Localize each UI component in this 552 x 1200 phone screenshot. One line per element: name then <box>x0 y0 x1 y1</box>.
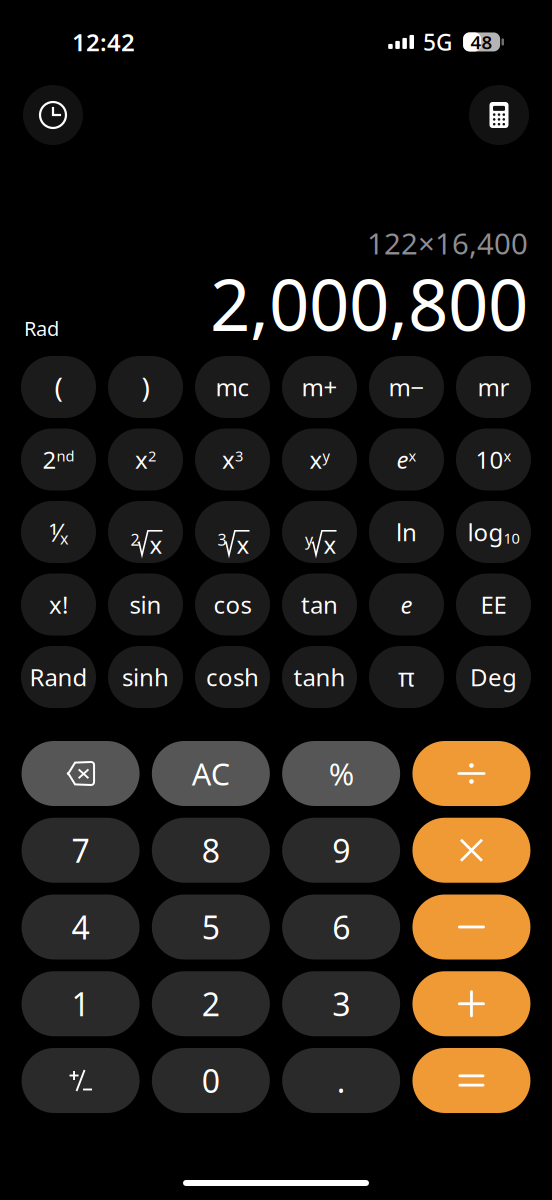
staticText: ex <box>396 444 416 475</box>
staticText: x <box>236 529 249 560</box>
button[interactable]: 1 <box>22 971 140 1036</box>
button[interactable]: Divide <box>412 741 530 806</box>
button[interactable]: ) <box>108 356 183 418</box>
button[interactable]: . <box>282 1048 400 1113</box>
staticText: x <box>149 529 162 560</box>
staticText: 3 <box>332 982 350 1025</box>
staticText: EE <box>480 589 506 620</box>
staticText: cos <box>213 589 251 620</box>
button[interactable]: m+ <box>282 356 357 418</box>
button[interactable]: tan <box>282 573 357 635</box>
button[interactable]: e <box>369 573 444 635</box>
staticText: Rand <box>29 661 87 693</box>
staticText: 4 <box>72 906 90 948</box>
button[interactable]: Calculator <box>469 85 529 145</box>
button[interactable]: EE <box>456 573 531 635</box>
staticText: cosh <box>206 661 259 693</box>
staticText: x2 <box>135 444 156 475</box>
button[interactable]: History <box>23 85 83 145</box>
button[interactable]: cosh <box>195 646 270 708</box>
button[interactable]: mc <box>195 356 270 418</box>
button[interactable]: 8 <box>152 818 270 883</box>
button[interactable]: Nth root <box>282 501 357 563</box>
button[interactable]: ⅟x <box>21 501 96 563</box>
button[interactable]: Multiply <box>412 818 530 883</box>
staticText: mr <box>477 371 509 403</box>
button[interactable]: 2nd <box>21 428 96 490</box>
button[interactable]: Plus minus <box>22 1048 140 1113</box>
staticText: 5 <box>202 906 220 948</box>
staticText: tanh <box>293 661 345 693</box>
button[interactable]: mr <box>456 356 531 418</box>
staticText: % <box>329 753 354 794</box>
staticText: m− <box>388 371 424 403</box>
button[interactable]: 7 <box>22 818 140 883</box>
button[interactable]: Add <box>412 971 530 1036</box>
staticText: 48 <box>471 29 493 54</box>
button[interactable]: π <box>369 646 444 708</box>
button[interactable]: m− <box>369 356 444 418</box>
staticText: Rad <box>24 315 59 341</box>
button[interactable]: Subtract <box>412 894 530 959</box>
button[interactable]: 9 <box>282 818 400 883</box>
button[interactable]: 6 <box>282 894 400 959</box>
button[interactable]: % <box>282 741 400 806</box>
staticText: mc <box>215 371 249 403</box>
button[interactable]: AC <box>152 741 270 806</box>
button[interactable]: 4 <box>22 894 140 959</box>
staticText: 2 <box>130 529 139 550</box>
staticText: 8 <box>202 829 220 871</box>
button[interactable]: x! <box>21 573 96 635</box>
button[interactable]: Deg <box>456 646 531 708</box>
button[interactable]: xy <box>282 428 357 490</box>
staticText: 12:42 <box>72 26 135 58</box>
staticText: AC <box>192 753 230 794</box>
staticText: π <box>398 660 415 694</box>
button[interactable]: ex <box>369 428 444 490</box>
button[interactable]: sinh <box>108 646 183 708</box>
staticText: ⅟x <box>49 515 68 549</box>
staticText: 6 <box>332 906 350 948</box>
staticText: 5G <box>423 27 452 57</box>
staticText: ln <box>396 516 417 548</box>
button[interactable]: Cube root <box>195 501 270 563</box>
staticText: . <box>337 1059 346 1102</box>
button[interactable]: ln <box>369 501 444 563</box>
staticText: 2nd <box>42 444 74 475</box>
staticText: x3 <box>222 444 243 475</box>
staticText: 10x <box>475 444 511 475</box>
staticText: sin <box>129 589 161 620</box>
staticText: ) <box>141 368 149 406</box>
staticText: x <box>323 529 336 560</box>
staticText: 2,000,800 <box>210 257 528 350</box>
button[interactable]: x2 <box>108 428 183 490</box>
button[interactable]: 5 <box>152 894 270 959</box>
staticText: sinh <box>122 661 169 693</box>
button[interactable]: 3 <box>282 971 400 1036</box>
staticText: 1 <box>72 982 90 1025</box>
staticText: x! <box>49 589 68 620</box>
button[interactable]: Rand <box>21 646 96 708</box>
staticText: m+ <box>301 371 337 403</box>
button[interactable]: x3 <box>195 428 270 490</box>
button[interactable]: Square root <box>108 501 183 563</box>
staticText: Deg <box>470 661 517 693</box>
staticText: log10 <box>467 516 519 548</box>
button[interactable]: 2 <box>152 971 270 1036</box>
button[interactable]: tanh <box>282 646 357 708</box>
staticText: 3 <box>217 529 226 550</box>
button[interactable]: log10 <box>456 501 531 563</box>
button[interactable]: sin <box>108 573 183 635</box>
button[interactable]: cos <box>195 573 270 635</box>
button[interactable]: 0 <box>152 1048 270 1113</box>
button[interactable]: 10x <box>456 428 531 490</box>
staticText: xy <box>309 444 329 475</box>
button[interactable]: Equals <box>412 1048 530 1113</box>
staticText: 0 <box>202 1059 220 1102</box>
button[interactable]: Delete <box>22 741 140 806</box>
staticText: 122×16,400 <box>367 223 528 262</box>
staticText: 2 <box>202 982 220 1025</box>
button[interactable]: ( <box>21 356 96 418</box>
staticText: ( <box>54 368 62 406</box>
staticText: 9 <box>332 829 350 871</box>
